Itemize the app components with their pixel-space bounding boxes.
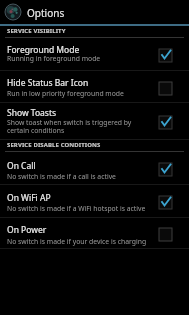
staticText: Run in low priority foreground mode <box>7 89 124 98</box>
staticText: Show toast when switch is triggered by <box>7 118 132 127</box>
staticText: SERVICE DISABLE CONDITIONS <box>7 141 101 149</box>
staticText: SERVICE VISIBILITY <box>7 27 66 35</box>
button[interactable]: Foreground Mode <box>0 38 189 70</box>
staticText: No switch is made if your device is char… <box>7 237 147 246</box>
button[interactable]: On Call <box>0 152 189 184</box>
staticText: certain conditions <box>7 126 65 135</box>
button[interactable]: On WiFi AP <box>0 185 189 217</box>
staticText: No switch is made if a call is active <box>7 172 116 181</box>
staticText: On Power <box>7 224 47 236</box>
staticText: No switch is made if a WiFi hotspot is a… <box>7 204 146 213</box>
button[interactable]: On Power <box>0 218 189 248</box>
staticText: Options <box>27 6 65 20</box>
staticText: Foreground Mode <box>7 44 80 56</box>
staticText: Hide Status Bar Icon <box>7 77 89 89</box>
button[interactable]: Options <box>0 0 189 24</box>
staticText: Running in foreground mode <box>7 54 101 63</box>
staticText: On Call <box>7 160 36 172</box>
staticText: On WiFi AP <box>7 192 51 204</box>
button[interactable]: Show Toasts <box>0 103 189 139</box>
button[interactable]: Hide Status Bar Icon <box>0 71 189 102</box>
staticText: Show Toasts <box>7 107 57 119</box>
